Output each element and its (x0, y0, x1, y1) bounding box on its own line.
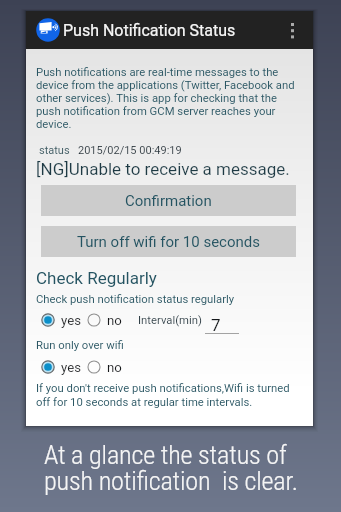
staticText: If you don't receive push notifications,… (36, 382, 298, 409)
staticText: status (39, 144, 70, 157)
button[interactable]: More options (275, 11, 309, 49)
staticText: no (107, 360, 122, 375)
staticText: Check push notification status regularly (36, 293, 235, 306)
button[interactable]: yes (41, 358, 81, 376)
button[interactable]: no (87, 311, 122, 329)
staticText: [NG]Unable to receive a message. (36, 159, 290, 179)
staticText: 2015/02/15 00:49:19 (78, 144, 182, 157)
button[interactable]: Confirmation (41, 185, 296, 216)
staticText: 7 (211, 315, 221, 335)
staticText: Run only over wifi (36, 339, 124, 352)
button[interactable]: no (87, 358, 122, 376)
staticText: no (107, 313, 122, 328)
staticText: Interval(min) (138, 314, 202, 327)
staticText: At a glance the status of push notificat… (44, 440, 298, 496)
button[interactable]: Turn off wifi for 10 seconds (41, 226, 296, 257)
staticText: yes (61, 313, 81, 328)
staticText: Turn off wifi for 10 seconds (77, 233, 261, 251)
staticText: Check Regularly (36, 268, 157, 288)
staticText: Push notifications are real-time message… (36, 66, 298, 131)
staticText: Push Notification Status (63, 21, 236, 40)
staticText: yes (61, 360, 81, 375)
button[interactable]: yes (41, 311, 81, 329)
staticText: Confirmation (125, 192, 212, 210)
